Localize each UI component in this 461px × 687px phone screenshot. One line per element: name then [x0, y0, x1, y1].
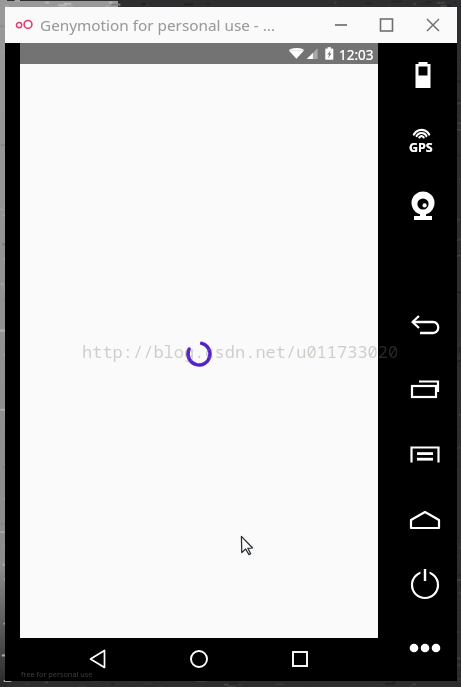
button[interactable]: Back	[406, 305, 446, 345]
staticText: http://blog.csdn.net/u011733020	[82, 340, 399, 363]
button[interactable]: Recent apps	[405, 369, 445, 409]
staticText: free for personal use	[21, 669, 93, 679]
button[interactable]: Home	[148, 638, 249, 681]
button[interactable]: Back	[20, 638, 148, 681]
button[interactable]: Camera	[403, 186, 443, 226]
button[interactable]: Close	[409, 7, 457, 43]
button[interactable]: Battery	[403, 56, 443, 96]
staticText: 12:03	[339, 46, 374, 64]
staticText: Genymotion for personal use - ...	[40, 15, 276, 36]
button[interactable]: GPS	[401, 122, 441, 162]
staticText: GPS	[409, 139, 433, 156]
button[interactable]: Maximize	[364, 7, 409, 43]
button[interactable]: Minimize	[318, 7, 364, 43]
button[interactable]: Recent apps	[249, 638, 350, 681]
button[interactable]: Home	[405, 500, 445, 540]
button[interactable]: Menu	[405, 435, 445, 475]
button[interactable]: More options	[405, 628, 445, 668]
button[interactable]: Power	[405, 565, 445, 605]
